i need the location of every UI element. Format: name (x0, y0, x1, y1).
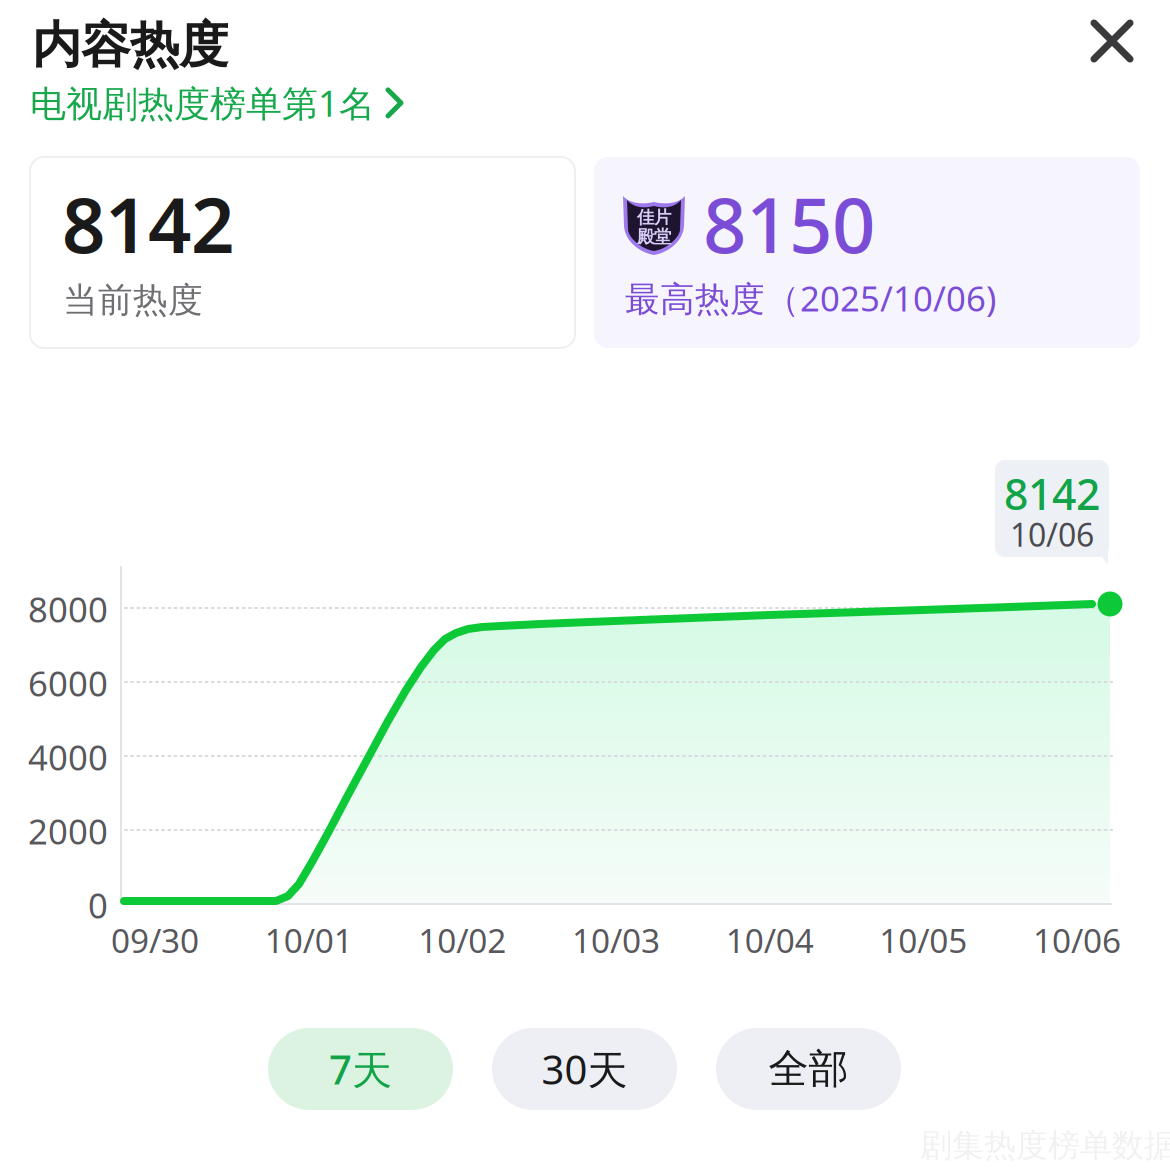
staticText: 30天 (541, 1042, 627, 1095)
staticText: 10/06 (1033, 918, 1121, 962)
staticText: 2000 (28, 808, 108, 854)
button[interactable]: 7天 (268, 1028, 453, 1110)
staticText: 4000 (28, 734, 108, 780)
staticText: 09/30 (111, 918, 199, 962)
staticText: 当前热度 (63, 279, 203, 322)
staticText: 6000 (28, 660, 108, 706)
staticText: 内容热度 (32, 15, 228, 76)
staticText: 10/01 (265, 918, 353, 962)
staticText: 殿堂 (637, 226, 671, 247)
staticText: 电视剧热度榜单第1名 (30, 79, 375, 127)
staticText: 10/05 (879, 918, 967, 962)
button[interactable]: 30天 (492, 1028, 677, 1110)
staticText: 8000 (28, 586, 108, 632)
staticText: 最高热度（2025/10/06) (625, 275, 996, 321)
staticText: 剧集热度榜单数据 (920, 1126, 1170, 1165)
button[interactable]: 全部 (716, 1028, 901, 1110)
staticText: 8142 (1004, 465, 1100, 522)
staticText: 10/02 (418, 918, 506, 962)
staticText: 10/06 (1010, 513, 1094, 555)
staticText: 10/03 (572, 918, 660, 962)
staticText: 佳片 (637, 207, 671, 228)
staticText: 8142 (62, 173, 234, 274)
staticText: 10/04 (726, 918, 814, 962)
button[interactable]: 电视剧热度榜单第1名 (30, 79, 405, 127)
staticText: 全部 (768, 1044, 848, 1093)
staticText: 7天 (329, 1042, 392, 1095)
staticText: 0 (88, 882, 108, 928)
staticText: 8150 (703, 173, 875, 274)
button[interactable]: Close (1088, 17, 1136, 65)
